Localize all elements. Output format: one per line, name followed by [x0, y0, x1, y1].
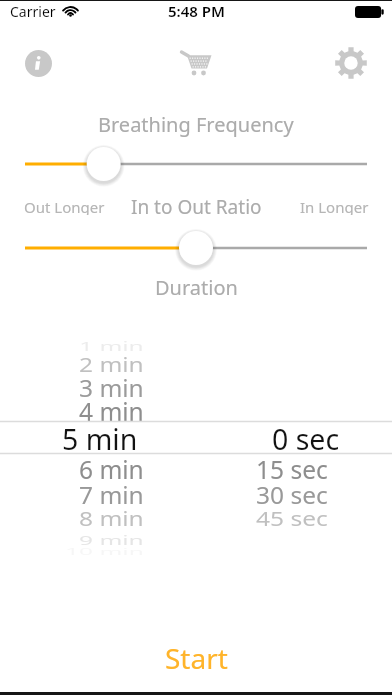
staticText: Carrier: [10, 2, 56, 21]
staticText: 5 min: [62, 420, 138, 454]
button[interactable]: Store: [176, 43, 216, 83]
button[interactable]: 0 sec: [0, 420, 340, 454]
button[interactable]: 4 min: [0, 394, 144, 428]
staticText: Breathing Frequency: [98, 111, 294, 138]
button[interactable]: 2 min: [0, 347, 144, 381]
button[interactable]: 5 min: [0, 420, 138, 454]
staticText: 8 min: [79, 505, 144, 532]
button[interactable]: 30 sec: [0, 477, 328, 511]
button[interactable]: Settings: [331, 43, 371, 83]
button[interactable]: 8 min: [0, 501, 144, 535]
button[interactable]: 9 min: [0, 522, 144, 556]
button[interactable]: 7 min: [0, 477, 144, 511]
staticText: 45 sec: [256, 505, 328, 532]
button[interactable]: 45 sec: [0, 501, 328, 535]
staticText: 30 sec: [256, 479, 328, 510]
button[interactable]: 6 min: [0, 452, 144, 486]
button[interactable]: 15 sec: [0, 452, 328, 486]
button[interactable]: 10 min: [0, 534, 144, 568]
staticText: In Longer: [300, 197, 369, 215]
staticText: 9 min: [79, 530, 144, 549]
staticText: 4 min: [79, 395, 144, 428]
staticText: Start: [165, 639, 228, 677]
button[interactable]: 1 min: [0, 329, 144, 363]
staticText: 5:48 PM: [168, 1, 225, 21]
staticText: 3 min: [79, 372, 144, 403]
staticText: Out Longer: [24, 197, 105, 215]
button[interactable]: Info: [18, 43, 58, 83]
staticText: 6 min: [79, 453, 144, 486]
staticText: Duration: [155, 274, 238, 301]
button[interactable]: [0, 142, 392, 186]
staticText: 1 min: [79, 338, 144, 355]
staticText: 15 sec: [256, 453, 328, 486]
button[interactable]: 3 min: [0, 370, 144, 404]
staticText: 7 min: [79, 479, 144, 510]
staticText: 2 min: [79, 352, 144, 377]
button[interactable]: Start: [0, 630, 392, 686]
staticText: In to Out Ratio: [131, 194, 262, 218]
button[interactable]: [0, 226, 392, 270]
staticText: 0 sec: [272, 420, 340, 454]
